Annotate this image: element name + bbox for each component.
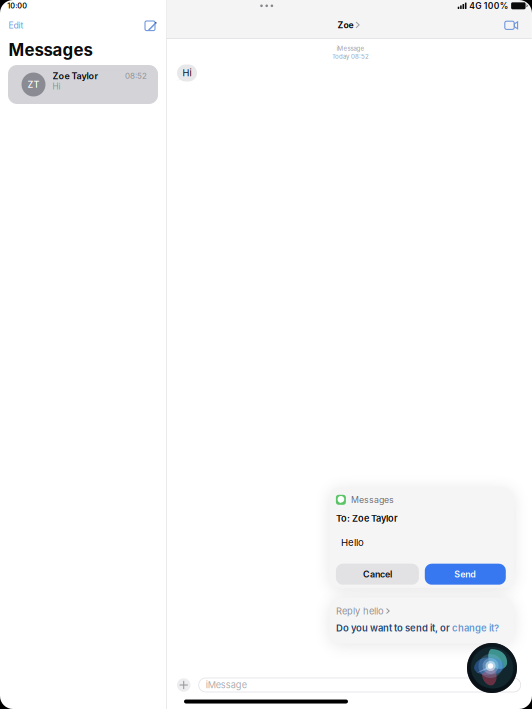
staticText: Edit — [8, 20, 23, 30]
staticText: Zoe — [337, 20, 353, 30]
button[interactable]: New Message — [137, 15, 165, 37]
staticText: iMessage — [336, 45, 364, 52]
button[interactable]: Cancel — [336, 564, 419, 585]
staticText: ZT — [27, 79, 39, 90]
staticText: Hello — [341, 537, 364, 548]
button[interactable]: Reply hello — [336, 605, 390, 617]
staticText: 08:52 — [125, 71, 147, 81]
staticText: To: Zoe Taylor — [336, 513, 398, 524]
button[interactable]: Edit — [1, 16, 31, 34]
staticText: 100% — [484, 1, 509, 11]
staticText: Hi — [182, 67, 191, 78]
staticText: Zoe Taylor — [52, 70, 98, 81]
staticText: Hi — [52, 81, 60, 91]
staticText: Messages — [8, 40, 92, 60]
button[interactable]: FaceTime video call — [496, 15, 526, 35]
staticText: change it? — [452, 622, 499, 634]
staticText: 10:00 — [7, 1, 27, 10]
button[interactable]: Add attachment — [173, 674, 195, 696]
button[interactable]: Zoe — [322, 15, 376, 35]
staticText: Cancel — [363, 569, 392, 580]
button[interactable]: Send — [425, 564, 506, 585]
button[interactable]: ZT — [8, 65, 158, 104]
staticText: 4G — [469, 1, 481, 11]
staticText: Messages — [351, 494, 394, 505]
staticText: iMessage — [206, 679, 247, 690]
staticText: Today 08:52 — [332, 53, 369, 60]
staticText: Send — [454, 569, 476, 580]
staticText: Reply hello — [336, 605, 384, 617]
staticText: Do you want to send it, or — [336, 622, 452, 634]
